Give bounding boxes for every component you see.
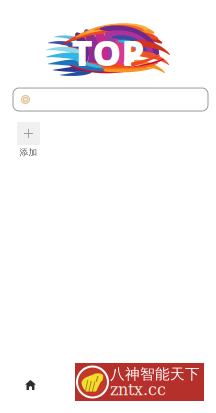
staticText: 添加: [19, 147, 37, 158]
button[interactable]: [0, 88, 216, 111]
button[interactable]: Home: [16, 371, 45, 401]
button[interactable]: 添加: [17, 122, 40, 158]
staticText: TOP: [71, 28, 144, 76]
staticText: zntx.cc: [110, 380, 166, 399]
staticText: 八神智能天下: [110, 365, 200, 383]
